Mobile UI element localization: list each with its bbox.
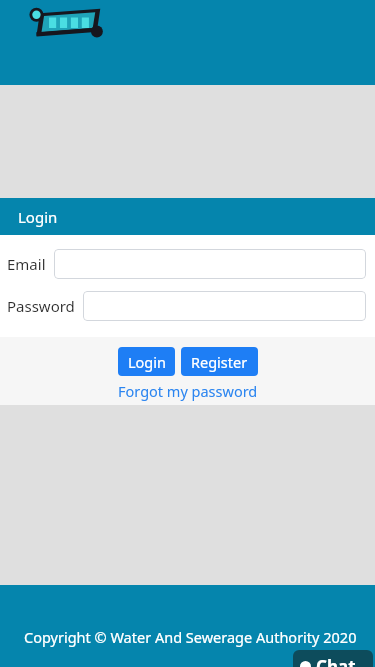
button[interactable]: Chat: [293, 650, 373, 667]
button[interactable]: Login: [118, 347, 175, 376]
staticText: Login: [18, 207, 58, 227]
button[interactable]: [54, 249, 366, 279]
staticText: Password: [7, 296, 75, 316]
staticText: Chat: [316, 655, 356, 667]
button[interactable]: Register: [181, 347, 258, 376]
staticText: Email: [7, 254, 46, 274]
staticText: Copyright © Water And Sewerage Authority…: [24, 627, 357, 647]
staticText: Register: [191, 352, 248, 372]
button[interactable]: [83, 291, 366, 321]
staticText: Login: [128, 352, 166, 372]
staticText: Forgot my password: [118, 381, 258, 401]
other: WASA logo: [23, 7, 107, 42]
button[interactable]: Forgot my password: [114, 379, 262, 403]
